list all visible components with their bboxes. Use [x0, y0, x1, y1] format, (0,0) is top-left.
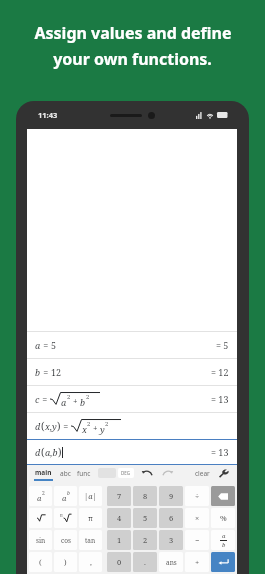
staticText: 9: [169, 491, 174, 501]
staticText: b: [80, 396, 86, 408]
button[interactable]: Undo: [141, 468, 154, 481]
staticText: =: [41, 366, 51, 378]
button[interactable]: 9: [159, 486, 183, 506]
button[interactable]: 6: [159, 508, 183, 528]
button[interactable]: Degrees: [118, 468, 134, 478]
button[interactable]: ): [54, 552, 77, 572]
button[interactable]: Redo: [161, 468, 174, 481]
staticText: x,y: [45, 420, 57, 432]
staticText: ,: [90, 557, 92, 567]
staticText: your own functions.: [53, 48, 212, 70]
staticText: −: [195, 535, 200, 545]
button[interactable]: Square: [29, 486, 52, 506]
button[interactable]: tan: [79, 530, 102, 550]
staticText: DEG: [121, 470, 131, 476]
button[interactable]: 0: [107, 552, 131, 572]
staticText: = 13: [211, 393, 229, 405]
staticText: .: [144, 557, 146, 567]
button[interactable]: −: [185, 530, 209, 550]
staticText: y: [100, 423, 105, 435]
staticText: x: [82, 423, 87, 435]
staticText: tan: [85, 536, 96, 545]
button[interactable]: Nth root: [54, 508, 77, 528]
button[interactable]: Fraction: [211, 530, 235, 550]
button[interactable]: 4: [107, 508, 131, 528]
staticText: ): [64, 557, 67, 567]
staticText: b: [67, 490, 70, 497]
staticText: 2: [42, 490, 45, 497]
button[interactable]: a: [27, 332, 237, 358]
staticText: (: [39, 557, 42, 567]
staticText: ×: [195, 513, 200, 523]
button[interactable]: +: [185, 552, 209, 572]
staticText: cos: [61, 536, 71, 545]
staticText: 6: [169, 513, 174, 523]
button[interactable]: π: [79, 508, 102, 528]
staticText: |a|: [84, 491, 97, 501]
button[interactable]: Backspace: [211, 486, 235, 506]
staticText: %: [220, 513, 227, 523]
staticText: a: [222, 532, 226, 540]
button[interactable]: clear: [195, 469, 210, 481]
staticText: (: [41, 419, 45, 433]
button[interactable]: 7: [107, 486, 131, 506]
staticText: Assign values and define: [34, 22, 232, 44]
button[interactable]: Enter: [211, 552, 235, 572]
staticText: ÷: [195, 491, 200, 501]
button[interactable]: 8: [133, 486, 157, 506]
button[interactable]: d: [27, 413, 237, 439]
staticText: 11:43: [38, 110, 58, 120]
staticText: n: [60, 512, 63, 518]
button[interactable]: ×: [185, 508, 209, 528]
staticText: = 12: [211, 366, 229, 378]
staticText: 2: [87, 420, 91, 428]
staticText: π: [88, 513, 93, 523]
staticText: =: [41, 339, 51, 351]
button[interactable]: Power: [54, 486, 77, 506]
button[interactable]: main: [34, 468, 53, 481]
staticText: ): [58, 445, 62, 459]
staticText: 4: [117, 513, 122, 523]
button[interactable]: 2: [133, 530, 157, 550]
button[interactable]: c: [27, 386, 237, 412]
staticText: a: [62, 493, 67, 503]
button[interactable]: .: [133, 552, 157, 572]
staticText: 5: [143, 513, 148, 523]
staticText: 3: [169, 535, 174, 545]
button[interactable]: Settings: [219, 469, 230, 480]
staticText: 2: [67, 393, 71, 401]
button[interactable]: b: [27, 359, 237, 385]
button[interactable]: 3: [159, 530, 183, 550]
staticText: 7: [117, 491, 122, 501]
button[interactable]: ÷: [185, 486, 209, 506]
staticText: =: [61, 420, 71, 432]
button[interactable]: Absolute value: [79, 486, 102, 506]
staticText: sin: [36, 536, 46, 545]
staticText: 2: [143, 535, 148, 545]
button[interactable]: abc: [60, 469, 71, 481]
staticText: = 5: [216, 339, 229, 351]
staticText: 2: [105, 420, 109, 428]
button[interactable]: Square root: [29, 508, 52, 528]
staticText: a: [35, 339, 41, 351]
button[interactable]: d: [27, 439, 237, 465]
button[interactable]: 5: [133, 508, 157, 528]
button[interactable]: %: [211, 508, 235, 528]
button[interactable]: ,: [79, 552, 102, 572]
staticText: a,b: [45, 446, 58, 458]
staticText: 12: [51, 366, 62, 378]
staticText: b: [222, 541, 226, 549]
button[interactable]: sin: [29, 530, 52, 550]
button[interactable]: func: [77, 469, 91, 481]
staticText: +: [71, 395, 80, 406]
staticText: a: [37, 493, 42, 503]
staticText: b: [35, 366, 41, 378]
button[interactable]: ans: [159, 552, 183, 572]
button[interactable]: cos: [54, 530, 77, 550]
staticText: +: [195, 557, 200, 567]
button[interactable]: 1: [107, 530, 131, 550]
button[interactable]: (: [29, 552, 52, 572]
staticText: c: [35, 393, 40, 405]
staticText: 1: [117, 535, 122, 545]
